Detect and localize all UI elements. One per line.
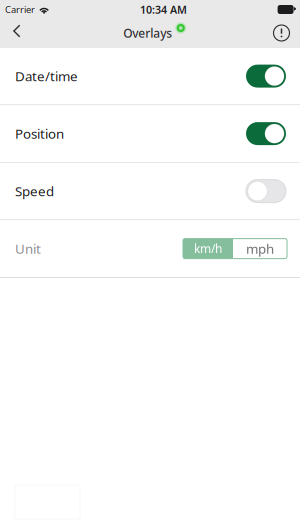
staticText: Unit [15,240,41,257]
button[interactable]: Back [0,19,34,47]
staticText: mph [246,240,274,257]
staticText: Speed [15,182,54,200]
staticText: Overlays [123,25,172,41]
button[interactable]: Date/time [0,48,300,104]
button[interactable]: km/h [183,239,233,259]
button[interactable]: Speed [0,163,300,219]
button[interactable]: Position [0,105,300,162]
staticText: Position [15,125,64,142]
button[interactable]: Info [261,18,300,47]
staticText: Carrier [5,3,35,16]
button[interactable]: mph [233,239,287,259]
staticText: 10:34 AM [140,2,187,17]
staticText: Date/time [15,67,78,85]
staticText: km/h [194,241,222,256]
button[interactable]: Unit [0,220,300,277]
